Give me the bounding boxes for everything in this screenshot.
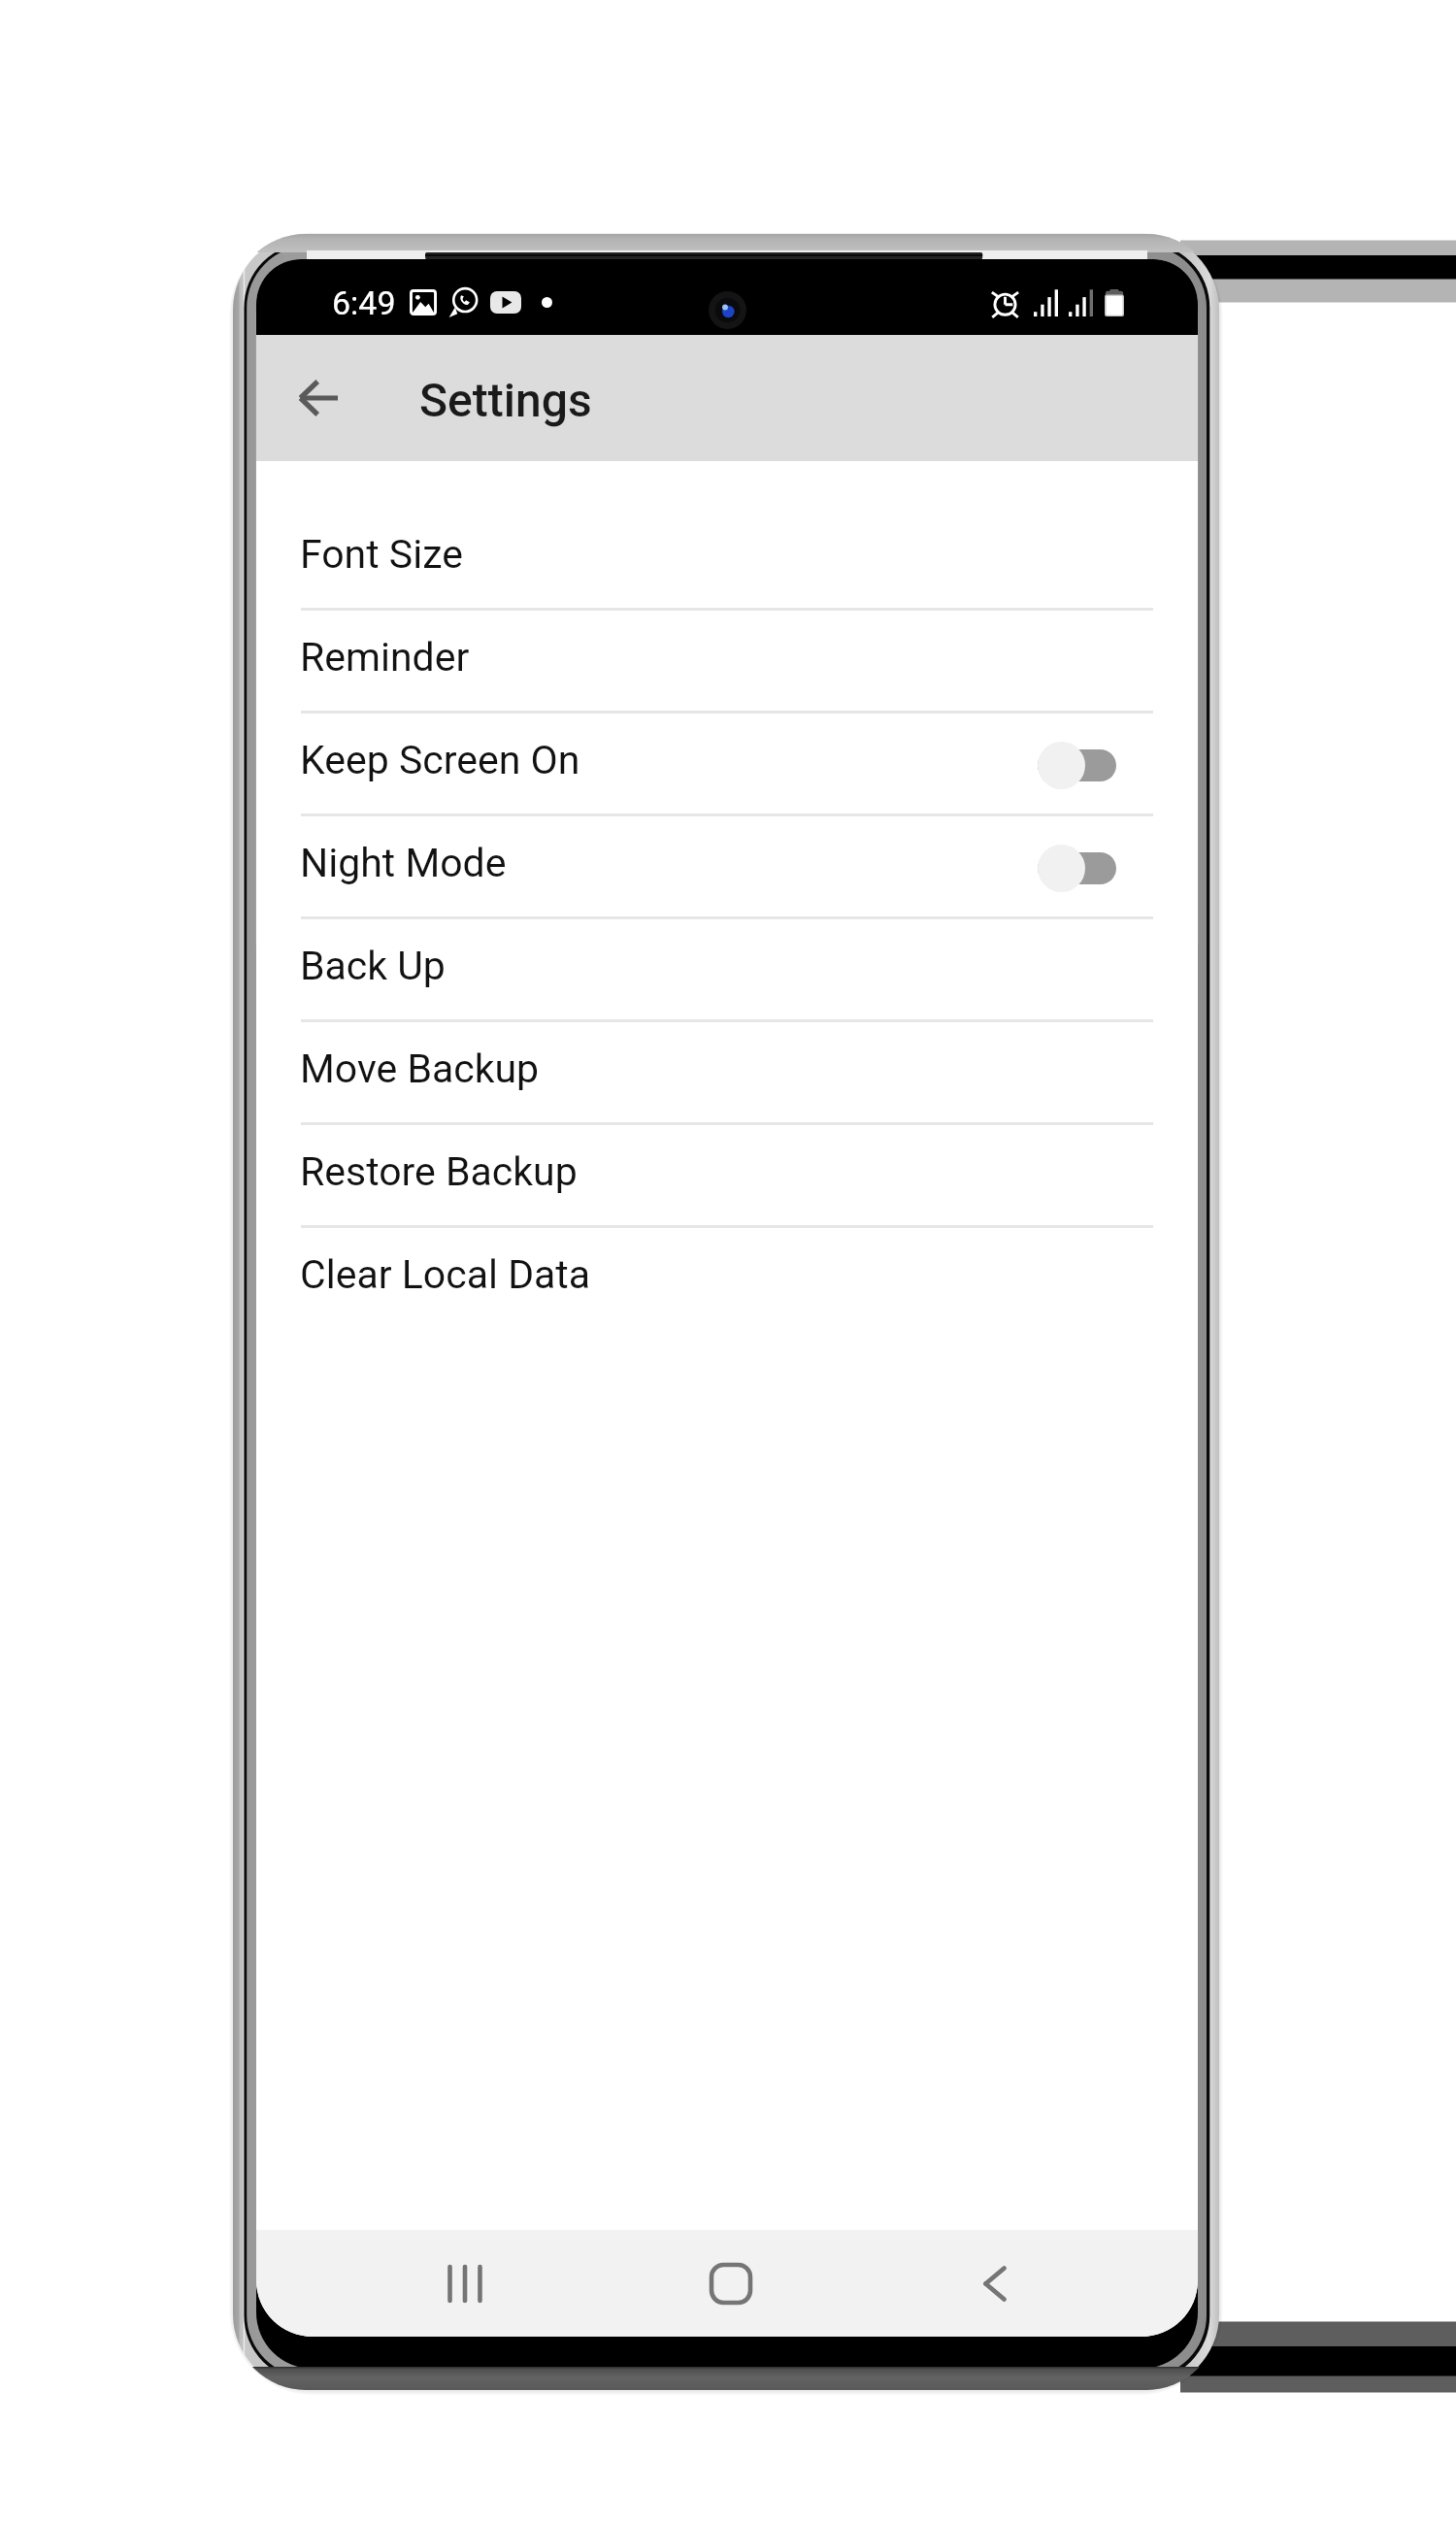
button[interactable]: Reminder (256, 611, 1198, 714)
button[interactable]: Recent apps (418, 2237, 512, 2330)
staticText: Move Backup (300, 1046, 540, 1092)
button[interactable]: Move Backup (256, 1022, 1198, 1125)
button[interactable]: Home (684, 2237, 778, 2330)
button[interactable]: Clear Local Data (256, 1228, 1198, 1331)
button[interactable]: Font Size (256, 508, 1198, 611)
button[interactable]: Toggle (1038, 843, 1116, 893)
button[interactable]: Night Mode (256, 816, 1198, 919)
button[interactable]: Navigate up (276, 355, 361, 441)
staticText: Font Size (300, 531, 463, 578)
button[interactable]: Back (948, 2237, 1042, 2330)
staticText: Keep Screen On (300, 737, 580, 783)
staticText: Back Up (300, 943, 446, 989)
button[interactable]: Keep Screen On (256, 714, 1198, 816)
staticText: Reminder (300, 634, 470, 681)
staticText: Clear Local Data (300, 1251, 591, 1298)
staticText: Restore Backup (300, 1148, 578, 1195)
button[interactable]: Restore Backup (256, 1125, 1198, 1228)
staticText: 6:49 (332, 283, 396, 322)
staticText: Settings (419, 373, 592, 427)
staticText: Night Mode (300, 840, 507, 886)
button[interactable]: Back Up (256, 919, 1198, 1022)
button[interactable]: Toggle (1038, 740, 1116, 790)
